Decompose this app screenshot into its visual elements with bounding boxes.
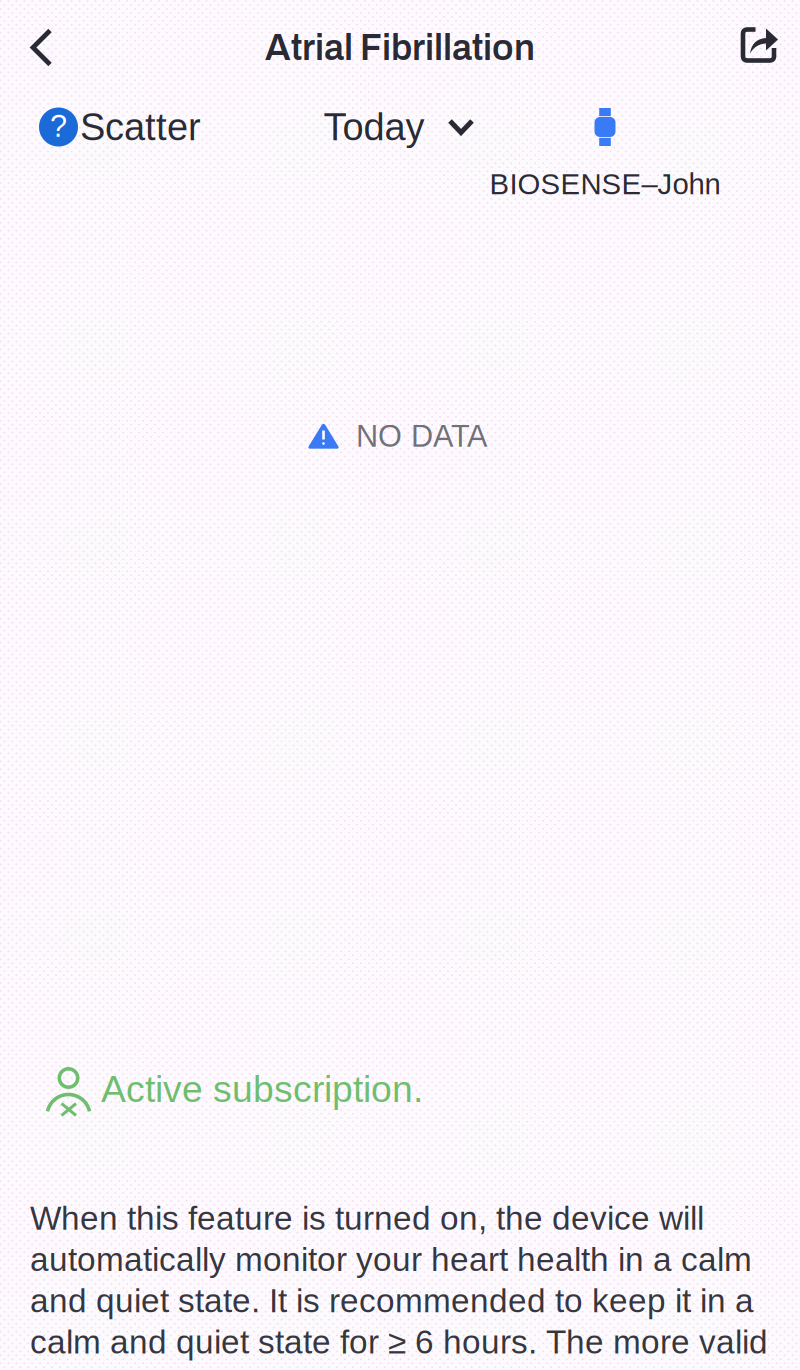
staticText: Atrial Fibrillation [265,28,535,68]
staticText: When this feature is turned on, the devi… [30,1199,768,1360]
button[interactable]: Share [731,16,787,74]
staticText: BIOSENSE–John [489,168,720,200]
staticText: Today [323,106,424,148]
staticText: NO DATA [356,419,487,453]
button[interactable]: Today [323,106,474,148]
staticText: ? [50,109,67,143]
button[interactable]: Back [11,14,71,80]
staticText: Scatter [80,106,201,148]
button[interactable]: ? [39,106,201,148]
staticText: Active subscription. [101,1068,423,1110]
